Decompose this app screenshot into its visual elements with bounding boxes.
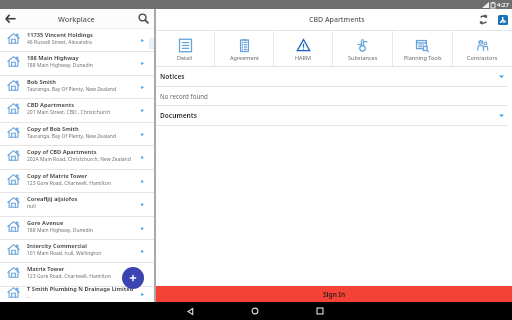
button[interactable]: Copy of Matrix Tower — [0, 170, 154, 193]
staticText: CBD Apartments — [309, 15, 365, 25]
staticText: 188 Main Highway, Dunedin — [27, 227, 93, 234]
staticText: Copy of CBD Apartments — [27, 148, 97, 156]
staticText: 188 Main Highway — [27, 54, 79, 62]
button[interactable]: Detail — [156, 31, 214, 66]
staticText: null — [27, 203, 36, 210]
button[interactable]: CBD Apartments — [0, 99, 154, 123]
button[interactable]: HARM — [274, 31, 332, 66]
staticText: Notices — [160, 72, 185, 81]
staticText: CBD Apartments — [27, 101, 74, 109]
button[interactable]: 11735 Vincent Holdings — [0, 29, 154, 52]
staticText: 101 Main Road, null, Wellington — [27, 250, 102, 257]
staticText: 4:27 — [497, 1, 509, 9]
staticText: Bob Smith — [27, 78, 56, 86]
staticText: Detail — [177, 54, 193, 61]
button[interactable]: Sign In — [156, 286, 512, 302]
button[interactable]: Refresh — [473, 9, 493, 30]
button[interactable]: Coreafljij aijsiofos — [0, 193, 154, 217]
button[interactable]: Agreement — [215, 31, 273, 66]
staticText: Intercity Commercial — [27, 242, 87, 250]
button[interactable]: Copy of CBD Apartments — [0, 146, 154, 170]
button[interactable]: Gore Avenue — [0, 217, 154, 240]
staticText: 202A Main Road, Christchurch, New Zealan… — [27, 156, 131, 163]
staticText: Copy of Matrix Tower — [27, 172, 88, 180]
staticText: Tauranga, Bay Of Plenty, New Zealand — [27, 86, 117, 93]
staticText: Workplace — [58, 14, 95, 24]
button[interactable]: Bob Smith — [0, 76, 154, 99]
staticText: Substances — [348, 54, 378, 61]
staticText: .. — [27, 293, 30, 300]
staticText: Copy of Bob Smith — [27, 125, 79, 133]
button[interactable]: Add — [122, 267, 144, 289]
button[interactable]: Recents — [300, 302, 340, 320]
staticText: 123 Gore Road, Chartwell, Hamilton — [27, 180, 111, 187]
staticText: 123 Gore Road, Chartwell, Hamilton — [27, 273, 111, 280]
button[interactable]: Planning Tools — [393, 31, 452, 66]
button[interactable]: Export PDF — [494, 9, 512, 30]
staticText: Tauranga, Bay Of Plenty, New Zealand — [27, 133, 117, 140]
button[interactable]: Matrix Tower — [0, 263, 154, 287]
button[interactable]: Back — [0, 9, 20, 28]
staticText: Sign In — [323, 290, 346, 299]
staticText: 188 Main Highway, Dunedin — [27, 62, 93, 69]
staticText: Documents — [160, 111, 197, 120]
button[interactable]: Substances — [333, 31, 392, 66]
button[interactable]: T Smith Plumbing N Drainage Limited — [0, 287, 154, 302]
staticText: Matrix Tower — [27, 265, 65, 273]
button[interactable]: Documents — [160, 106, 504, 125]
button[interactable]: Notices — [160, 67, 504, 86]
staticText: T Smith Plumbing N Drainage Limited — [27, 285, 134, 293]
staticText: 201 Main Street, CBD , Christchurch — [27, 109, 111, 116]
staticText: No record found — [160, 92, 208, 100]
staticText: HARM — [295, 54, 311, 61]
staticText: 11735 Vincent Holdings — [27, 31, 93, 39]
staticText: Coreafljij aijsiofos — [27, 195, 78, 203]
staticText: Planning Tools — [404, 54, 442, 61]
button[interactable]: Search — [132, 9, 154, 28]
button[interactable]: Intercity Commercial — [0, 240, 154, 263]
button[interactable]: 188 Main Highway — [0, 52, 154, 76]
staticText: 46 Russell Street, Alexandra — [27, 39, 92, 46]
button[interactable]: Contractors — [453, 31, 512, 66]
staticText: Gore Avenue — [27, 219, 64, 227]
button[interactable]: Home — [235, 302, 275, 320]
staticText: Contractors — [467, 54, 498, 61]
button[interactable]: Copy of Bob Smith — [0, 123, 154, 146]
button[interactable]: Back — [170, 302, 210, 320]
staticText: Agreement — [230, 54, 259, 61]
